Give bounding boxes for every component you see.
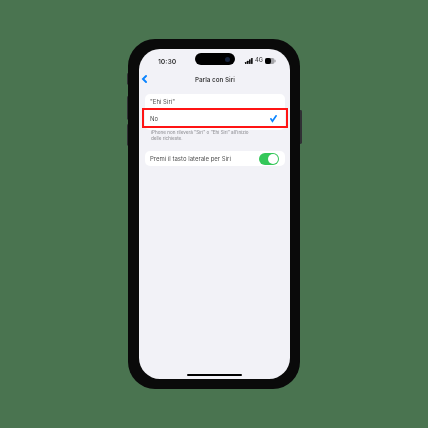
staticText: "Ehi Siri" [150,98,175,105]
button[interactable]: No [145,110,285,130]
staticText: No [150,115,159,122]
button[interactable]: Premi il tasto laterale per Siri [145,151,285,166]
staticText: Premi il tasto laterale per Siri [150,155,231,162]
staticText: 4G [255,57,263,64]
staticText: Parla con Siri [195,76,235,84]
staticText: 10:30 [158,57,177,65]
button[interactable]: "Ehi Siri" [145,94,285,109]
button[interactable]: Back [139,70,152,88]
staticText: iPhone non rileverà "Siri" o "Ehi Siri" … [151,130,252,142]
